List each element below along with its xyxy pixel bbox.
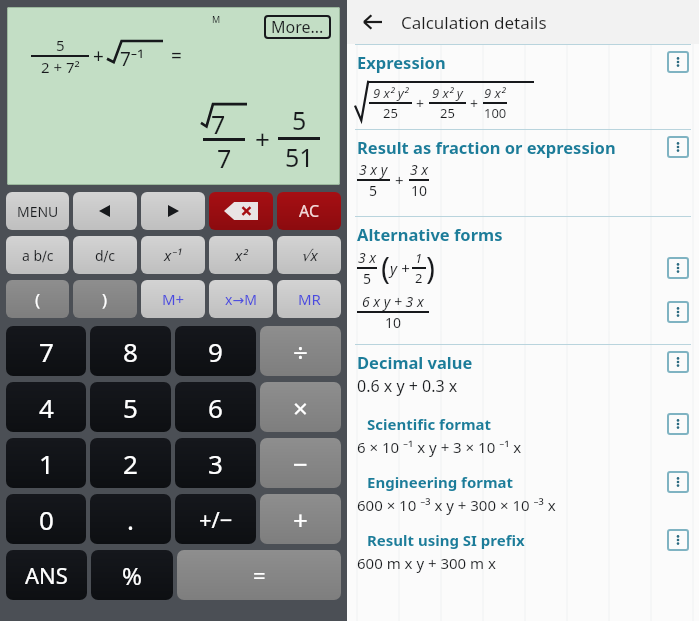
button[interactable]: 8 xyxy=(90,326,171,376)
button[interactable]: d∕c xyxy=(73,236,137,274)
button[interactable]: 2 xyxy=(90,438,171,488)
staticText: 3 x y xyxy=(359,160,388,179)
button[interactable]: Delete xyxy=(209,192,273,230)
staticText: x² xyxy=(235,245,248,265)
staticText: + xyxy=(416,94,425,113)
button[interactable]: 6 xyxy=(175,382,256,432)
button[interactable]: MR xyxy=(277,280,341,318)
staticText: 5 xyxy=(363,269,372,288)
button[interactable]: 1 xyxy=(6,438,86,488)
button[interactable]: Engineering format xyxy=(367,471,699,493)
staticText: Decimal value xyxy=(357,351,473,373)
button[interactable]: More options xyxy=(667,301,689,323)
button[interactable]: Scientific format xyxy=(367,413,699,435)
staticText: y + xyxy=(390,258,410,278)
button[interactable]: More... xyxy=(264,15,331,39)
staticText: 9 x² xyxy=(484,84,506,102)
staticText: + xyxy=(293,502,308,537)
button[interactable]: Result using SI prefix xyxy=(367,529,699,551)
staticText: 8 xyxy=(123,334,138,369)
staticText: 3 x xyxy=(358,248,377,267)
button[interactable]: M+ xyxy=(141,280,205,318)
staticText: ÷ xyxy=(293,334,308,369)
button[interactable]: 0 xyxy=(6,494,86,544)
button[interactable]: x→M xyxy=(209,280,273,318)
button[interactable]: 4 xyxy=(6,382,86,432)
staticText: x→M xyxy=(225,290,257,309)
button[interactable]: More options xyxy=(667,471,689,493)
button[interactable]: More options xyxy=(667,351,689,373)
staticText: More... xyxy=(271,16,324,38)
staticText: 2 + 7² xyxy=(41,57,80,77)
button[interactable]: Result as fraction or expression xyxy=(357,136,699,158)
staticText: 7 xyxy=(217,141,232,175)
button[interactable]: ANS xyxy=(6,550,87,600)
button[interactable]: a b∕c xyxy=(6,236,69,274)
staticText: 6 x y + 3 x xyxy=(362,292,424,311)
button[interactable]: MENU xyxy=(6,192,69,230)
button[interactable]: Back xyxy=(357,6,389,38)
staticText: × xyxy=(293,390,308,425)
staticText: 10 xyxy=(411,181,428,200)
button[interactable]: 9 xyxy=(175,326,256,376)
button[interactable]: More options xyxy=(667,257,689,279)
staticText: = xyxy=(171,43,182,69)
staticText: Scientific format xyxy=(367,414,492,434)
staticText: 3 x xyxy=(410,160,429,179)
staticText: Result as fraction or expression xyxy=(357,136,616,158)
staticText: a b∕c xyxy=(22,246,54,265)
staticText: 9 x² y xyxy=(432,84,463,102)
button[interactable]: More options xyxy=(667,51,689,73)
staticText: ANS xyxy=(25,560,68,590)
staticText: − xyxy=(293,446,308,481)
button[interactable]: More options xyxy=(667,413,689,435)
button[interactable]: % xyxy=(91,550,173,600)
staticText: 3 xyxy=(208,446,223,481)
staticText: x⁻¹ xyxy=(164,245,182,265)
button[interactable]: x² xyxy=(209,236,273,274)
staticText: 5 xyxy=(292,103,307,137)
staticText: 100 xyxy=(484,104,507,122)
staticText: 600 × 10 ⁻³ x y + 300 × 10 ⁻³ x xyxy=(357,495,556,515)
button[interactable]: 3 xyxy=(175,438,256,488)
staticText: 5 xyxy=(369,181,378,200)
button[interactable]: + xyxy=(260,494,341,544)
staticText: % xyxy=(122,559,142,592)
button[interactable]: Decimal value xyxy=(357,351,699,373)
staticText: 7 xyxy=(39,334,54,369)
button[interactable]: 7 xyxy=(6,326,86,376)
staticText: MR xyxy=(298,289,321,309)
staticText: Expression xyxy=(357,51,446,73)
staticText: 9 x² y² xyxy=(373,84,409,102)
button[interactable]: Expression xyxy=(357,51,699,73)
staticText: MENU xyxy=(17,202,59,221)
button[interactable]: More options xyxy=(667,529,689,551)
button[interactable]: . xyxy=(90,494,171,544)
staticText: 7⁻¹ xyxy=(120,46,144,72)
button[interactable]: ÷ xyxy=(260,326,341,376)
staticText: 6 xyxy=(208,390,223,425)
button[interactable]: +/− xyxy=(175,494,256,544)
staticText: 6 × 10 ⁻¹ x y + 3 × 10 ⁻¹ x xyxy=(357,437,522,457)
staticText: 2 xyxy=(123,446,138,481)
staticText: 25 xyxy=(440,104,455,122)
button[interactable]: = xyxy=(177,550,341,600)
button[interactable]: AC xyxy=(277,192,341,230)
button[interactable]: x⁻¹ xyxy=(141,236,205,274)
button[interactable]: Move right xyxy=(141,192,205,230)
staticText: + xyxy=(93,43,104,69)
staticText: 4 xyxy=(39,390,54,425)
staticText: ) xyxy=(102,288,108,311)
button[interactable]: ( xyxy=(6,280,69,318)
button[interactable]: √x xyxy=(277,236,341,274)
button[interactable]: × xyxy=(260,382,341,432)
button[interactable]: Move left xyxy=(73,192,137,230)
staticText: d∕c xyxy=(95,246,116,265)
button[interactable]: 5 xyxy=(90,382,171,432)
button[interactable]: − xyxy=(260,438,341,488)
staticText: ) xyxy=(426,247,435,288)
button[interactable]: ) xyxy=(73,280,137,318)
button[interactable]: More options xyxy=(667,136,689,158)
staticText: 5 xyxy=(56,35,65,55)
staticText: 9 xyxy=(208,334,223,369)
